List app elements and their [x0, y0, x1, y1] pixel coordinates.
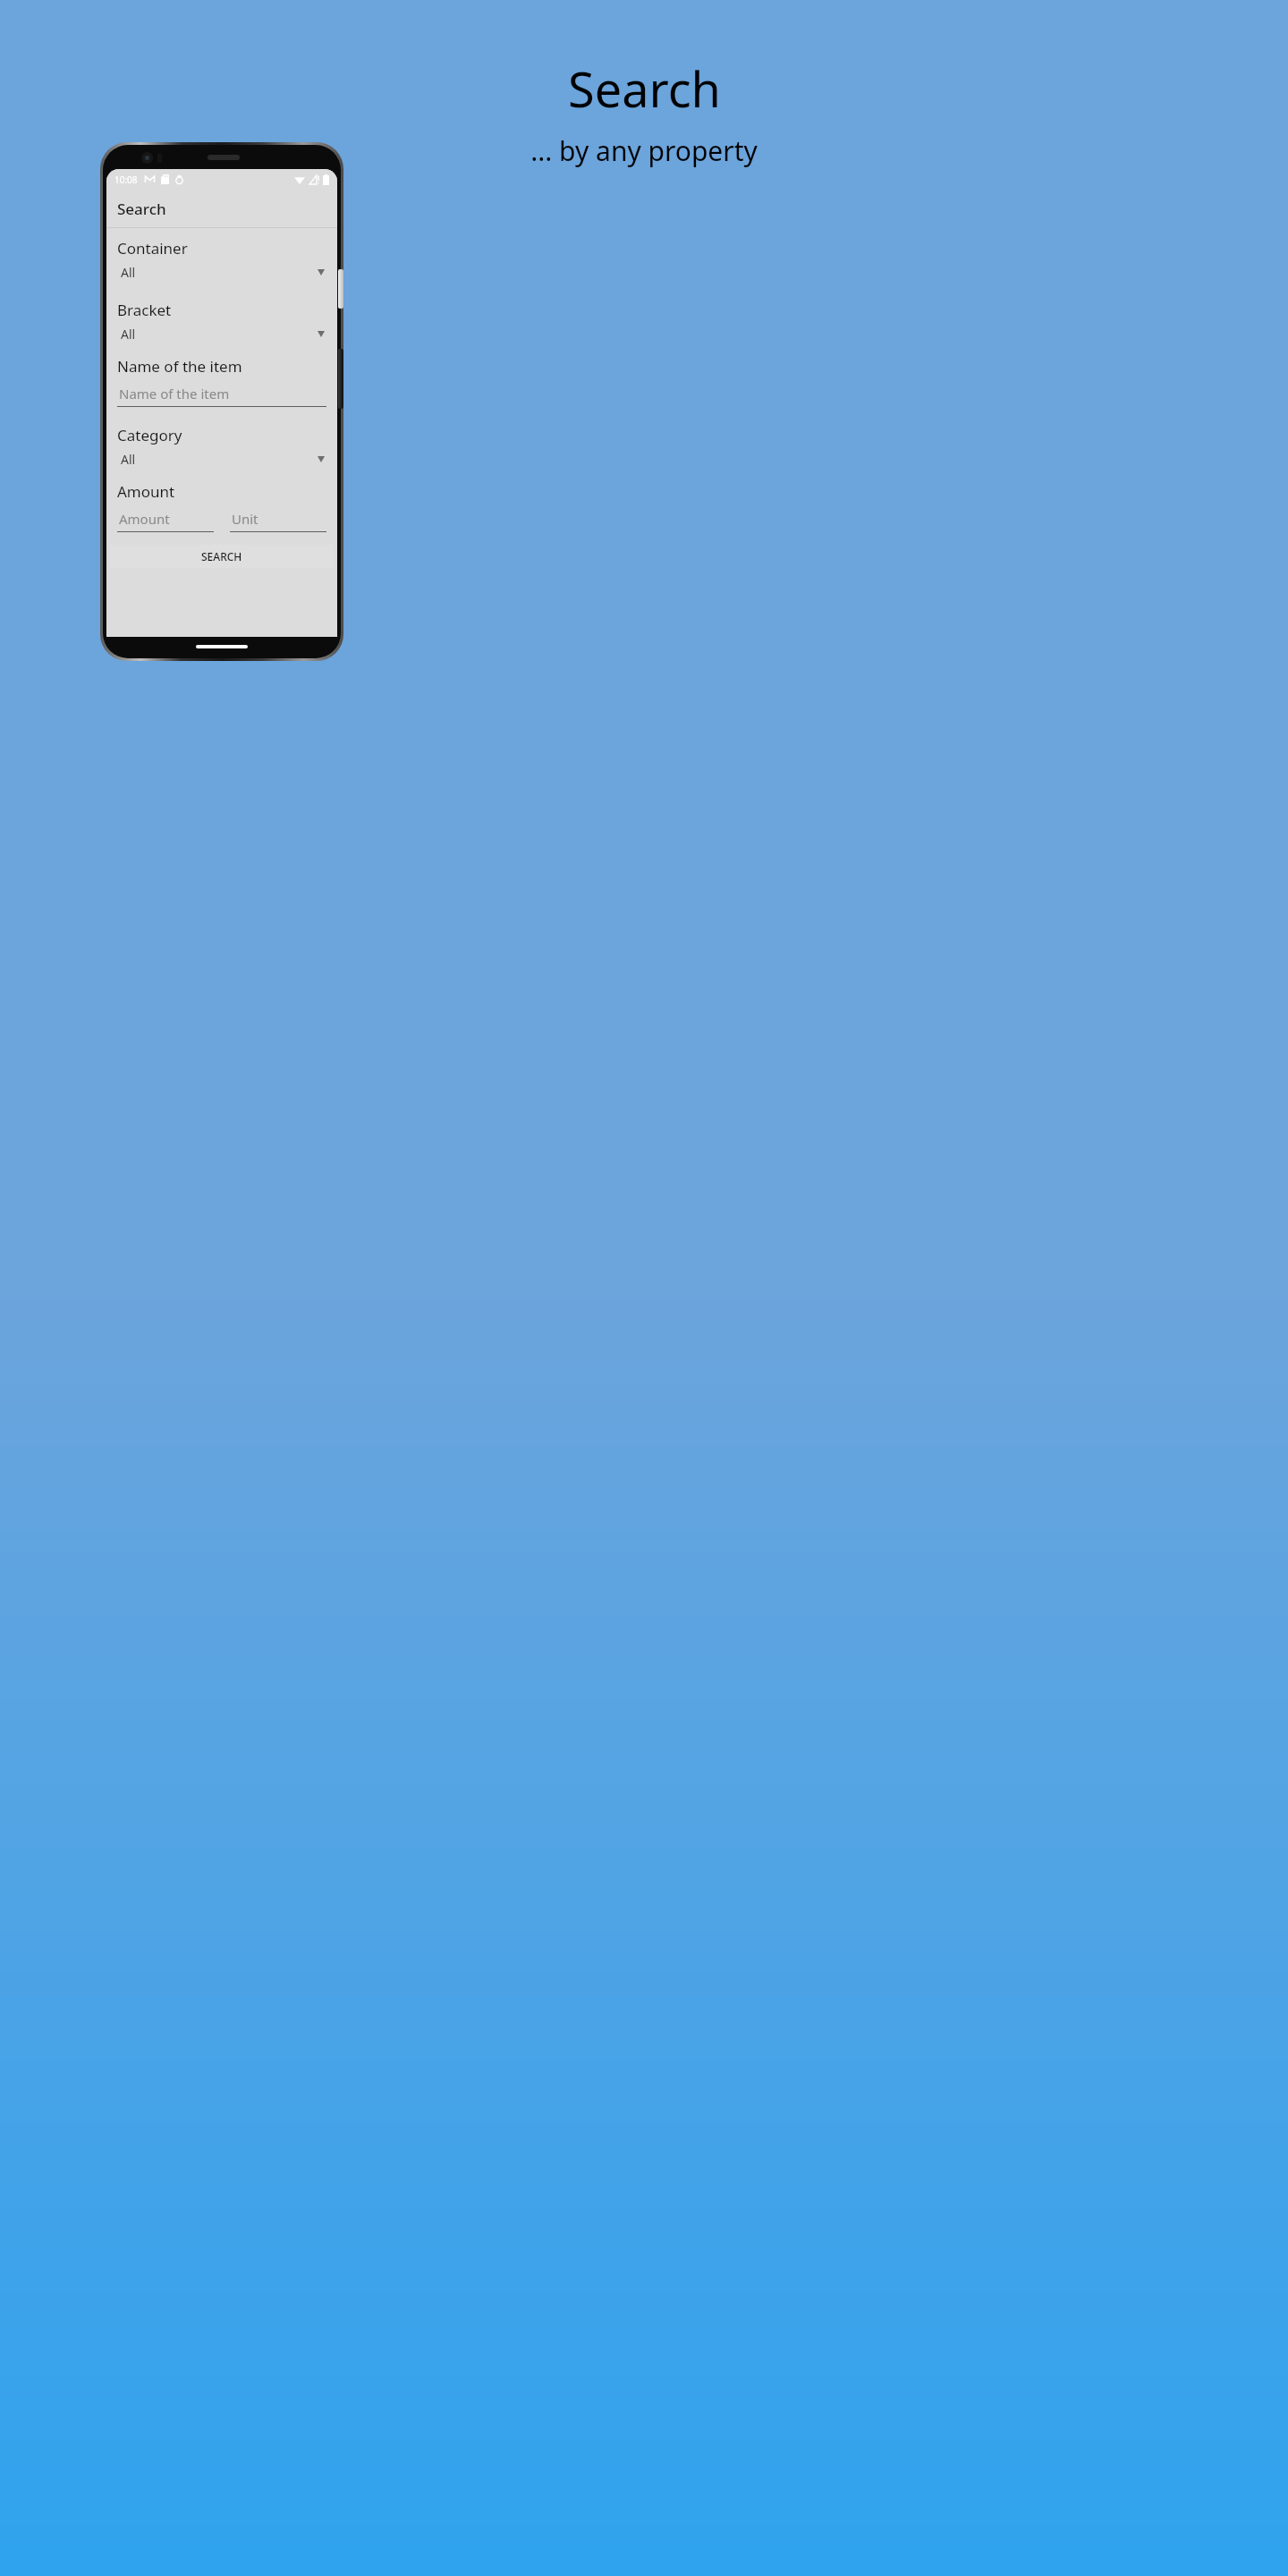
staticText: Name of the item [117, 356, 242, 377]
staticText: Bracket [117, 300, 172, 320]
button[interactable]: Category [106, 423, 337, 470]
staticText: Category [117, 425, 182, 445]
staticText: ... by any property [530, 132, 758, 169]
staticText: 10:08 [114, 174, 138, 186]
button[interactable]: Name of the item [106, 354, 337, 409]
staticText: Search [568, 55, 721, 122]
button[interactable]: Container [106, 236, 337, 284]
staticText: Unit [232, 510, 258, 528]
staticText: All [121, 264, 136, 281]
staticText: Search [117, 199, 166, 219]
button[interactable]: Amount [117, 510, 214, 532]
staticText: All [121, 451, 136, 468]
staticText: Name of the item [119, 385, 230, 402]
staticText: All [121, 326, 136, 343]
button[interactable]: Unit [230, 510, 326, 532]
staticText: SEARCH [201, 549, 242, 563]
staticText: Amount [119, 510, 170, 528]
button[interactable]: SEARCH [110, 545, 334, 568]
staticText: Amount [117, 481, 175, 502]
staticText: Container [117, 238, 188, 258]
button[interactable]: Bracket [106, 298, 337, 345]
